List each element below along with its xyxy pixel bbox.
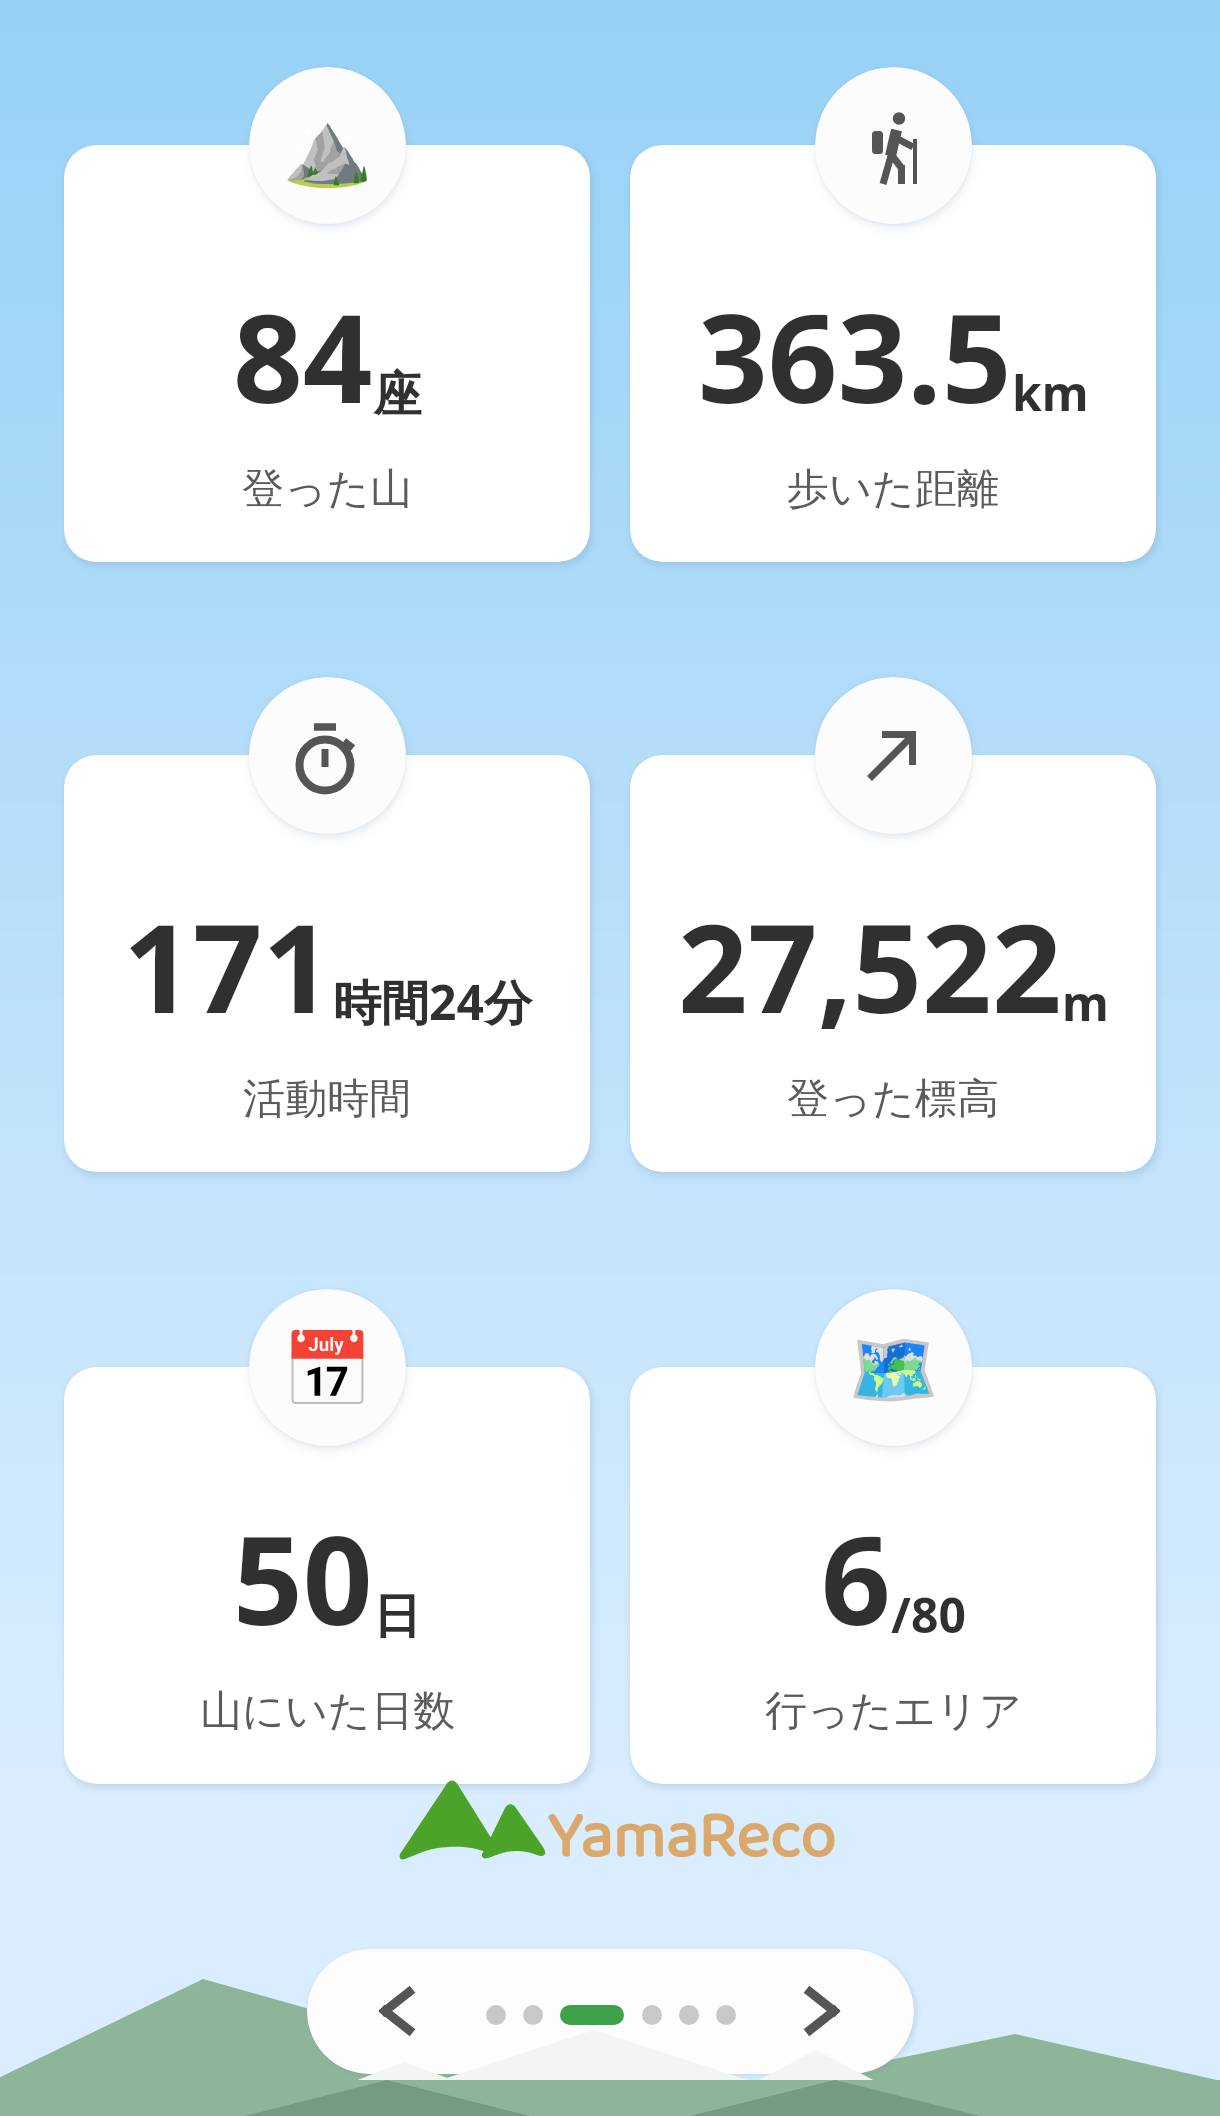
button[interactable]: 行ったエリア <box>815 1289 972 1446</box>
staticText: 行ったエリア <box>765 1685 1022 1738</box>
button[interactable]: Page <box>679 2005 699 2025</box>
button[interactable]: 登った山 <box>249 67 406 224</box>
button[interactable]: Page 3 <box>560 2005 624 2025</box>
button[interactable]: Page <box>523 2005 543 2025</box>
button[interactable]: Timer <box>249 677 406 834</box>
staticText: 27,522 <box>678 883 1062 1049</box>
button[interactable]: Hiking <box>815 67 972 224</box>
staticText: 登った山 <box>242 463 412 516</box>
staticText: 登った標高 <box>787 1073 999 1126</box>
button[interactable]: 27,522 <box>630 755 1156 1172</box>
button[interactable]: 84 <box>64 145 590 562</box>
button[interactable]: 363.5 <box>630 145 1156 562</box>
staticText: km <box>1012 360 1089 425</box>
staticText: 6 <box>821 1495 891 1661</box>
staticText: 363.5 <box>698 273 1012 439</box>
staticText: ⛰️ <box>282 105 373 191</box>
button[interactable]: 50 <box>64 1367 590 1784</box>
staticText: 84 <box>233 273 373 439</box>
staticText: 歩いた距離 <box>787 463 999 516</box>
staticText: 座 <box>373 365 421 425</box>
button[interactable]: Previous <box>357 1971 437 2051</box>
button[interactable]: Page <box>642 2005 662 2025</box>
button[interactable]: 171 <box>64 755 590 1172</box>
button[interactable]: Page <box>486 2005 506 2025</box>
staticText: 50 <box>233 1495 373 1661</box>
staticText: 🗺️ <box>848 1327 939 1413</box>
staticText: 山にいた日数 <box>200 1685 455 1738</box>
staticText: m <box>1062 970 1109 1035</box>
staticText: 📅 <box>282 1327 373 1413</box>
staticText: 活動時間 <box>243 1073 411 1126</box>
button[interactable]: 山にいた日数 <box>249 1289 406 1446</box>
button[interactable]: 6 <box>630 1367 1156 1784</box>
staticText: /80 <box>891 1582 966 1647</box>
staticText: 日 <box>373 1587 421 1647</box>
staticText: YamaReco <box>548 1785 837 1880</box>
button[interactable]: Next <box>782 1971 862 2051</box>
button[interactable]: Page <box>716 2005 736 2025</box>
button[interactable]: Elevation <box>815 677 972 834</box>
staticText: 時間24分 <box>333 969 532 1035</box>
staticText: 171 <box>123 883 333 1049</box>
